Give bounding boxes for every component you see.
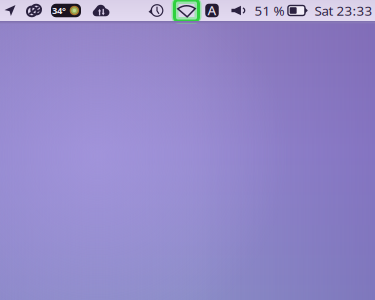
- staticText: A: [207, 1, 216, 19]
- button[interactable]: Battery 51 percent: [250, 0, 311, 21]
- staticText: 34°: [52, 4, 66, 16]
- button[interactable]: Weather, 34 degrees: [49, 0, 83, 21]
- button[interactable]: Creative Cloud: [23, 0, 45, 21]
- button[interactable]: Cloud Sync: [89, 0, 113, 21]
- staticText: 51 %: [254, 2, 284, 19]
- button[interactable]: Location Services: [0, 0, 21, 21]
- button[interactable]: Wi-Fi: [174, 0, 199, 21]
- button[interactable]: Sat 23:33: [310, 0, 375, 21]
- button[interactable]: Input Source: [201, 0, 222, 21]
- staticText: Sat 23:33: [314, 2, 372, 19]
- button[interactable]: Time Machine: [145, 0, 169, 21]
- button[interactable]: Volume: [227, 0, 249, 21]
